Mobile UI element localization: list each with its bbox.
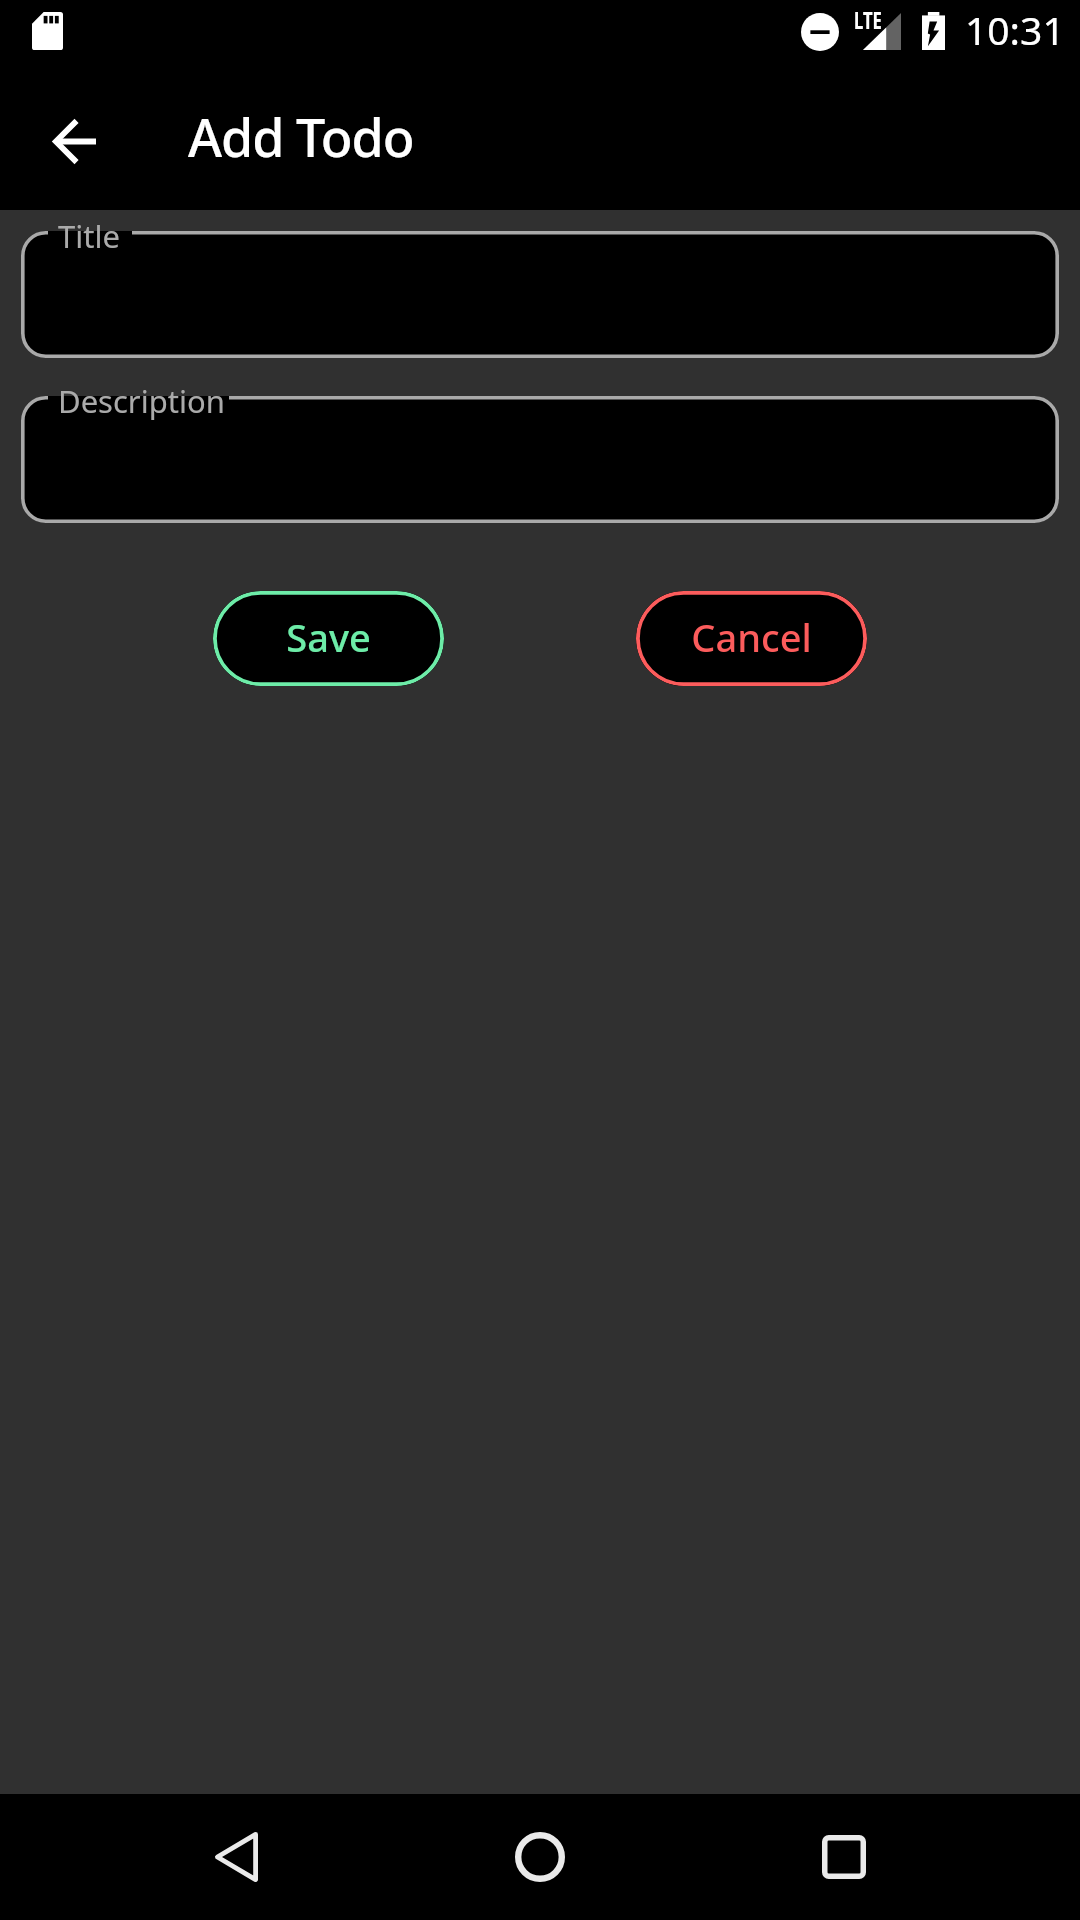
button[interactable]: Save — [213, 591, 444, 686]
staticText: Cancel — [691, 611, 812, 663]
button[interactable]: Back — [26, 93, 122, 189]
button[interactable]: Cancel — [636, 591, 867, 686]
staticText: 10:31 — [965, 3, 1065, 56]
staticText: Description — [58, 380, 225, 422]
staticText: Save — [286, 611, 371, 663]
staticText: LTE — [854, 4, 882, 35]
staticText: Add Todo — [188, 101, 414, 172]
button[interactable]: Title — [21, 231, 1059, 358]
button[interactable]: Recents — [774, 1794, 914, 1920]
button[interactable]: Back — [166, 1794, 306, 1920]
button[interactable]: Home — [470, 1794, 610, 1920]
button[interactable]: Description — [21, 396, 1059, 523]
staticText: Title — [58, 215, 120, 257]
